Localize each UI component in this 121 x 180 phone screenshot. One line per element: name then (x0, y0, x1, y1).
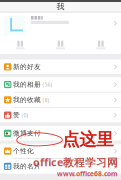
button[interactable]: 微博支付 (0, 126, 121, 141)
staticText: 微博支付 (13, 129, 41, 137)
button[interactable]: 个性化 (0, 144, 121, 158)
staticText: 我 (56, 2, 64, 11)
staticText: www.office68.com (57, 169, 118, 178)
button[interactable]: 我的名片 (0, 159, 121, 174)
staticText: office教程学习网 (33, 155, 118, 169)
button[interactable]: 我的收藏 (0, 92, 121, 107)
button[interactable]: 赞 (0, 108, 121, 122)
staticText: 赞 (13, 111, 20, 119)
staticText: 我的收藏 (13, 96, 41, 104)
staticText: 我的名片 (13, 162, 41, 170)
button[interactable] (0, 13, 121, 36)
staticText: 新的好友 (13, 63, 41, 71)
button[interactable] (0, 36, 40, 54)
button[interactable]: 新的好友 (0, 59, 121, 74)
staticText: 个性化 (13, 147, 34, 155)
button[interactable]: 我的相册 (0, 77, 121, 92)
staticText: 我的相册 (13, 80, 41, 89)
staticText: 点这里 (62, 129, 113, 150)
button[interactable] (81, 36, 121, 54)
staticText: (0) (21, 112, 28, 119)
staticText: (56) (42, 81, 52, 88)
staticText: (8) (42, 96, 49, 103)
button[interactable] (40, 36, 81, 54)
